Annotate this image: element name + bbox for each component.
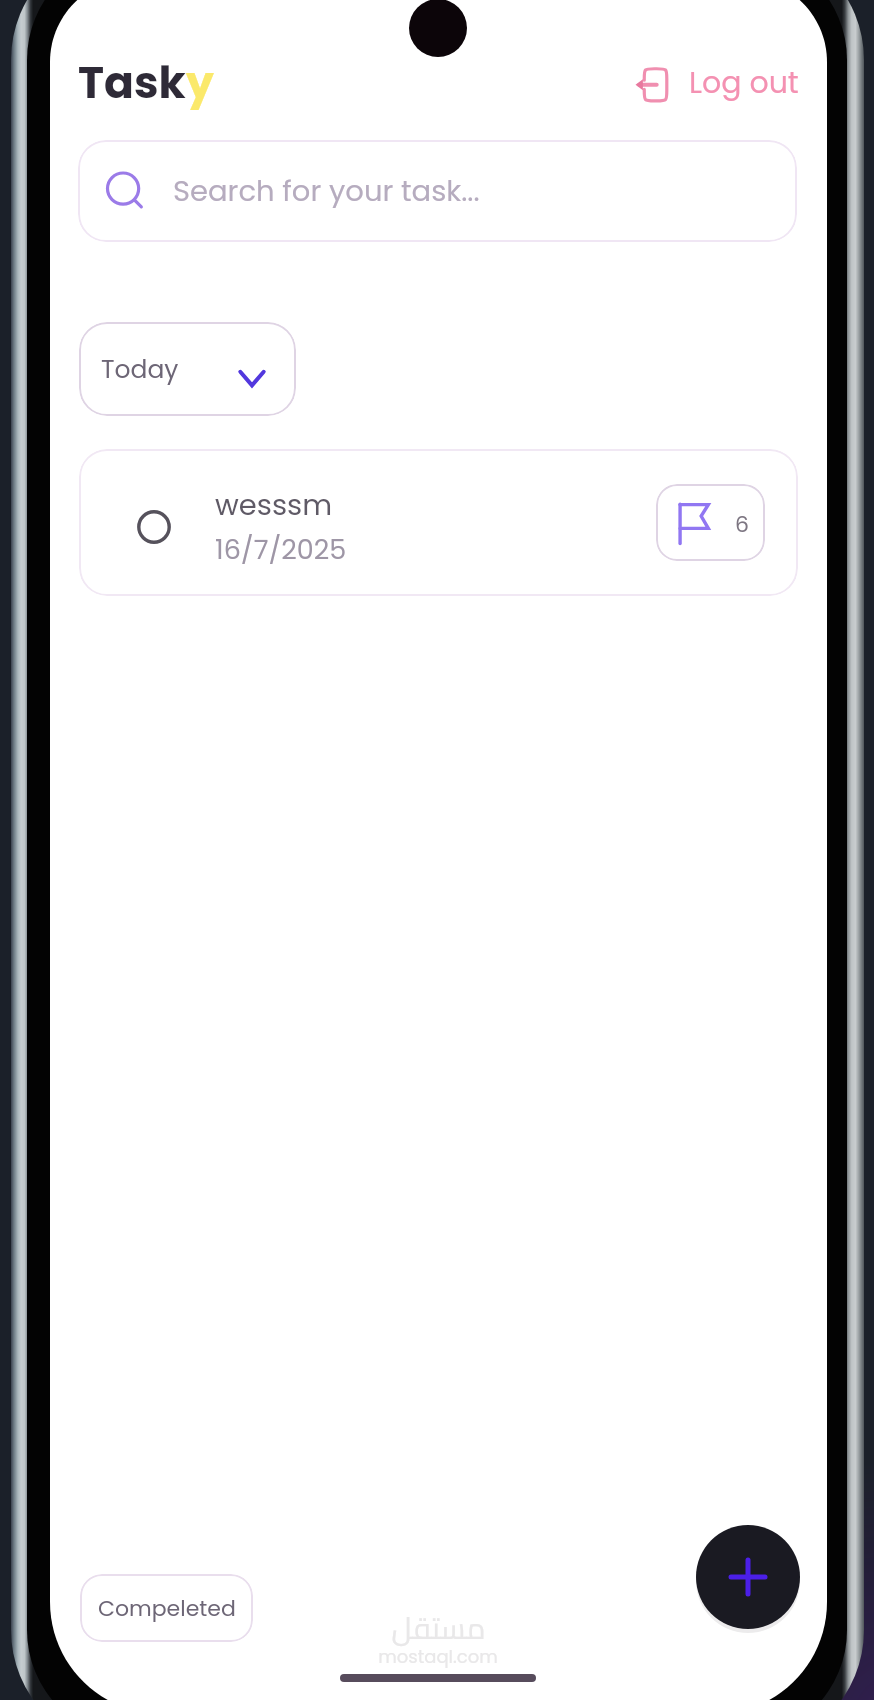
button[interactable]: Mark task complete xyxy=(79,449,798,596)
staticText: mostaql.com xyxy=(378,1644,498,1669)
button[interactable]: Search for your task... xyxy=(78,140,797,242)
staticText: Compeleted xyxy=(98,1593,236,1624)
staticText: Log out xyxy=(689,62,799,104)
button[interactable]: Compeleted xyxy=(80,1574,253,1642)
button[interactable]: Mark task complete xyxy=(137,510,171,544)
button[interactable]: Add task xyxy=(696,1525,800,1629)
button[interactable]: Today xyxy=(79,322,296,416)
button[interactable]: Log out xyxy=(630,60,799,106)
button[interactable]: Task xyxy=(78,52,214,114)
staticText: 6 xyxy=(735,509,749,540)
staticText: y xyxy=(186,52,214,114)
staticText: Search for your task... xyxy=(173,171,480,212)
staticText: Task xyxy=(78,52,186,114)
staticText: Today xyxy=(101,352,179,387)
button[interactable]: Priority flag, 6 xyxy=(656,484,765,561)
staticText: wesssm xyxy=(215,485,333,526)
staticText: 16/7/2025 xyxy=(215,531,347,569)
staticText: مستقل xyxy=(391,1600,486,1656)
